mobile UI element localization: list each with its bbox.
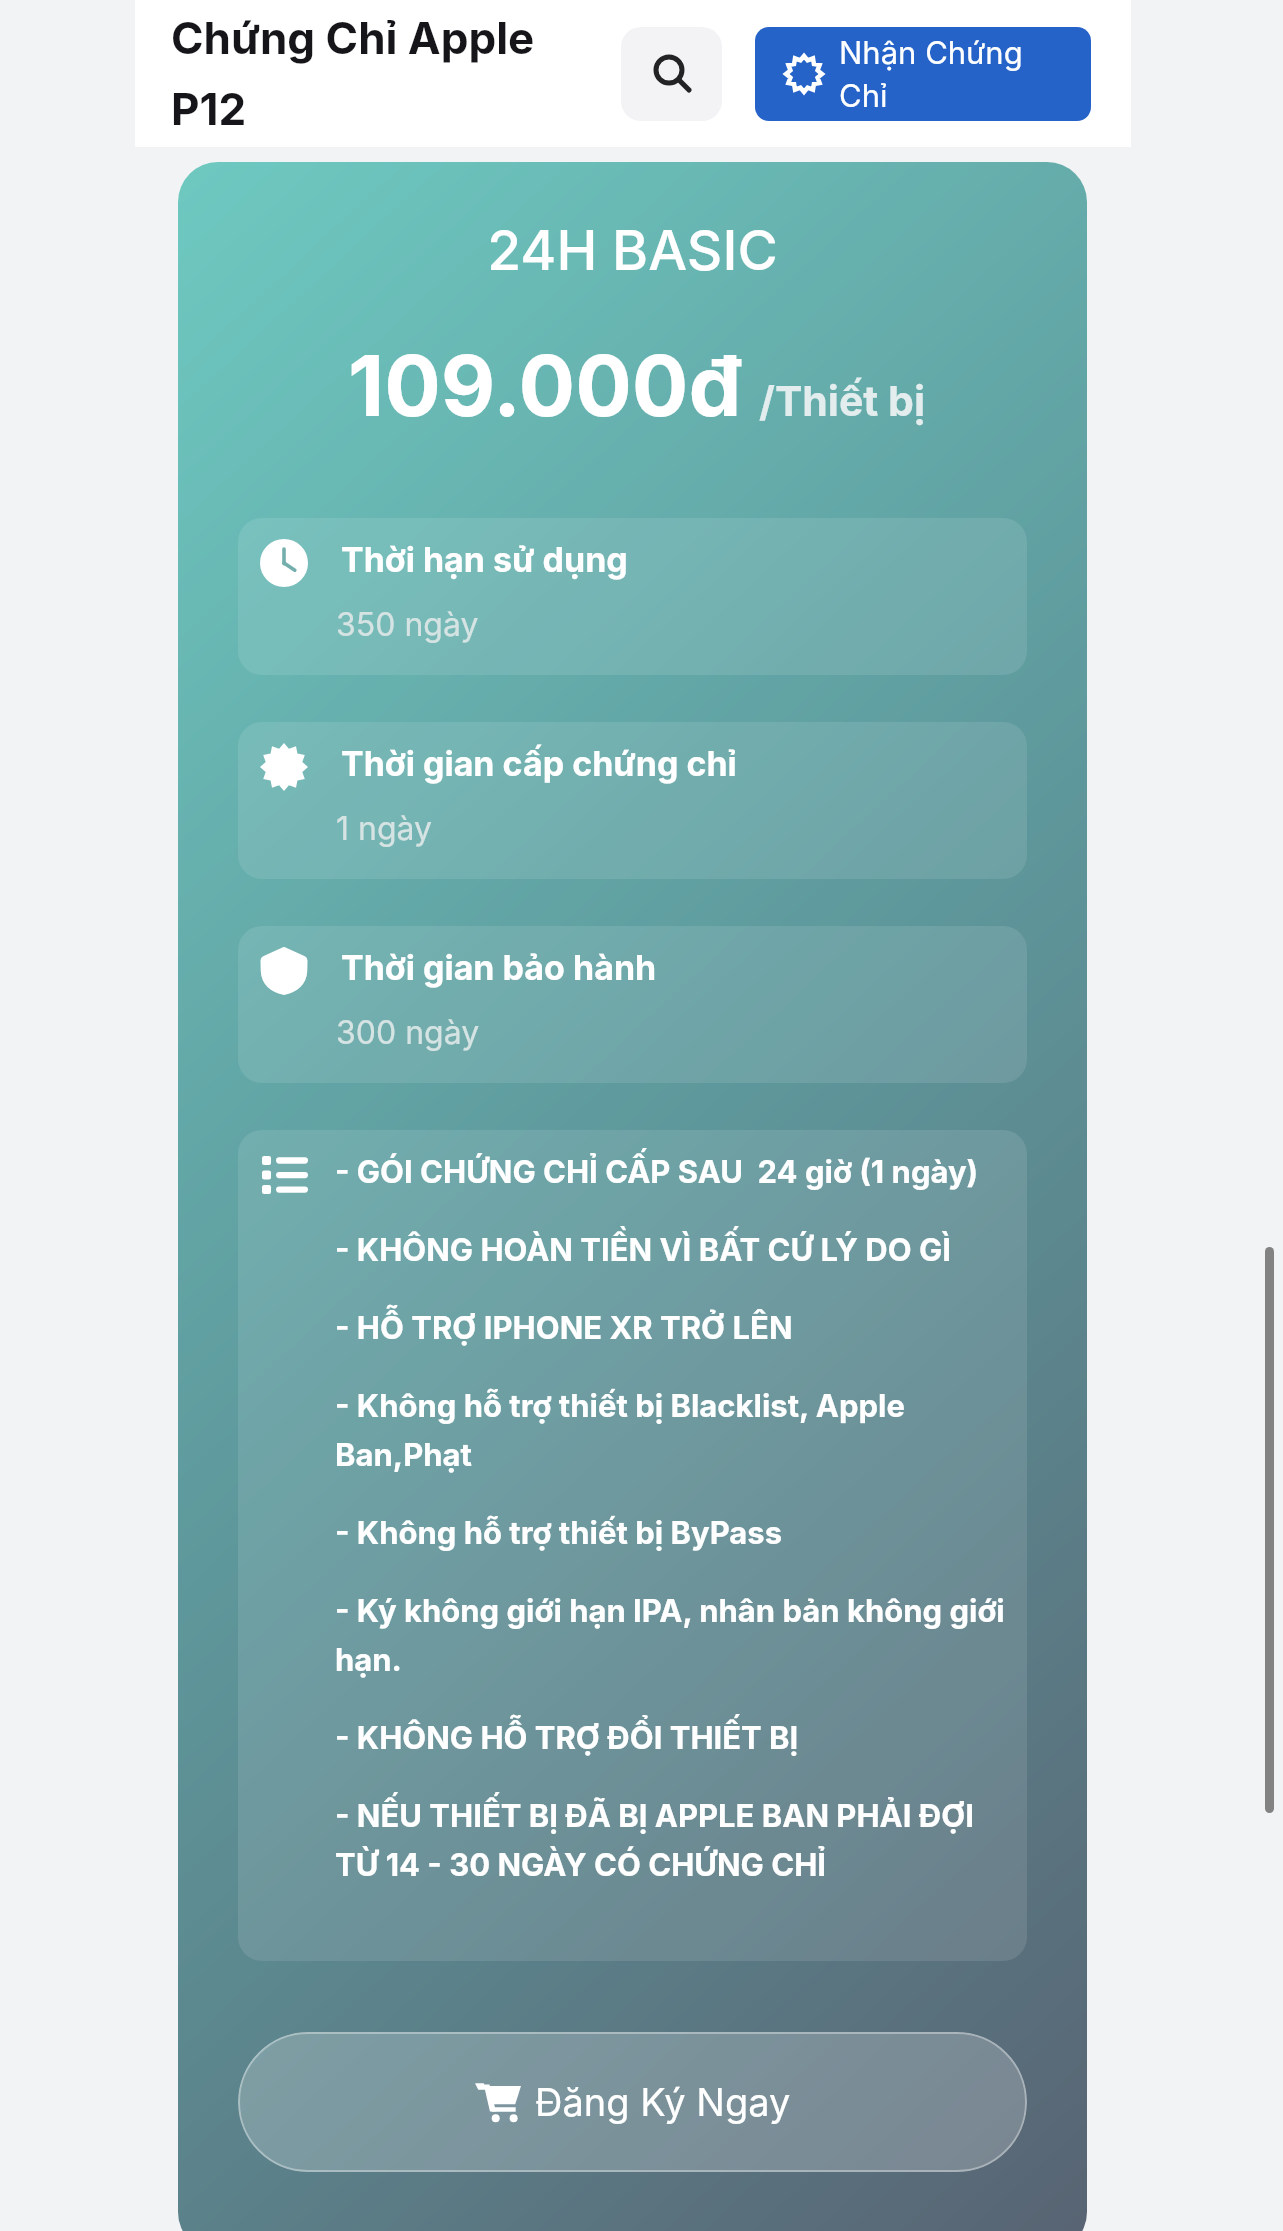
staticText: - NẾU THIẾT BỊ ĐÃ BỊ APPLE BAN PHẢI ĐỢI …: [335, 1797, 1010, 1884]
staticText: 109.000đ: [348, 335, 742, 437]
button[interactable]: Thời hạn sử dụng: [238, 518, 1027, 675]
staticText: Chứng Chỉ Apple P12: [171, 11, 571, 135]
staticText: Đăng Ký Ngay: [535, 2079, 791, 2125]
staticText: /Thiết bị: [759, 376, 926, 426]
staticText: 300 ngày: [336, 1013, 480, 1052]
staticText: - Không hỗ trợ thiết bị ByPass: [335, 1514, 783, 1552]
staticText: 1 ngày: [336, 809, 433, 848]
staticText: - HỖ TRỢ IPHONE XR TRỞ LÊN: [335, 1309, 793, 1347]
staticText: - KHÔNG HOÀN TIỀN VÌ BẤT CỨ LÝ DO GÌ: [335, 1231, 951, 1269]
staticText: - GÓI CHỨNG CHỈ CẤP SAU 24 giờ (1 ngày): [335, 1153, 979, 1191]
staticText: - KHÔNG HỖ TRỢ ĐỔI THIẾT BỊ: [335, 1719, 799, 1757]
staticText: 350 ngày: [336, 605, 479, 644]
staticText: - Không hỗ trợ thiết bị Blacklist, Apple…: [335, 1387, 1010, 1474]
staticText: Thời gian bảo hành: [341, 947, 657, 988]
staticText: - Ký không giới hạn IPA, nhân bản không …: [335, 1592, 1010, 1679]
button[interactable]: Thời gian bảo hành: [238, 926, 1027, 1083]
staticText: Thời gian cấp chứng chỉ: [341, 743, 737, 784]
button[interactable]: Đăng Ký Ngay: [238, 2032, 1027, 2172]
staticText: Thời hạn sử dụng: [341, 539, 628, 580]
button[interactable]: Search: [621, 27, 722, 121]
button[interactable]: Nhận Chứng Chỉ: [755, 27, 1091, 121]
staticText: Nhận Chứng Chỉ: [839, 34, 1039, 115]
staticText: 24H BASIC: [178, 217, 1087, 284]
button[interactable]: Thời gian cấp chứng chỉ: [238, 722, 1027, 879]
